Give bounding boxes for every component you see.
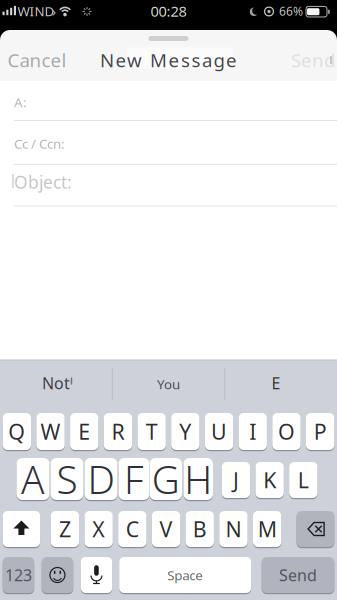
staticText: Send xyxy=(291,48,335,72)
staticText: C xyxy=(126,515,139,543)
staticText: T xyxy=(146,417,158,446)
staticText: 00:28 xyxy=(150,1,186,21)
staticText: I xyxy=(249,417,256,446)
button[interactable]: Shift xyxy=(3,511,40,547)
staticText: X xyxy=(92,515,105,543)
button[interactable]: A xyxy=(16,458,49,500)
button[interactable]: Object: xyxy=(14,165,337,199)
staticText: 66% xyxy=(279,3,303,19)
button[interactable]: N xyxy=(219,511,248,547)
button[interactable]: K xyxy=(255,462,284,498)
staticText: B xyxy=(193,515,207,543)
button[interactable]: U xyxy=(205,413,233,450)
staticText: K xyxy=(263,466,276,494)
staticText: Q xyxy=(8,417,25,446)
staticText: G xyxy=(152,453,180,505)
staticText: H xyxy=(184,453,212,505)
button[interactable]: Z xyxy=(51,511,79,547)
button[interactable]: Delete xyxy=(297,511,334,547)
button[interactable]: L xyxy=(289,462,317,498)
button[interactable]: H xyxy=(183,458,213,500)
staticText: New Message xyxy=(100,48,237,72)
button[interactable]: V xyxy=(152,511,180,547)
button[interactable]: J xyxy=(222,462,250,498)
button[interactable]: Numbers xyxy=(3,557,34,593)
staticText: F xyxy=(124,453,144,505)
button[interactable]: Send xyxy=(291,48,335,72)
staticText: M xyxy=(258,515,277,543)
button[interactable]: E xyxy=(221,363,331,403)
button[interactable]: M xyxy=(253,511,281,547)
button[interactable]: Drag indicator xyxy=(148,36,188,41)
button[interactable]: Space xyxy=(119,557,251,593)
staticText: E xyxy=(271,372,280,394)
staticText: J xyxy=(233,466,239,494)
button[interactable]: Not xyxy=(1,363,111,403)
button[interactable]: D xyxy=(84,458,117,500)
button[interactable]: A: xyxy=(14,87,337,117)
staticText: WIND xyxy=(17,2,54,20)
staticText: U xyxy=(211,417,227,446)
staticText: P xyxy=(314,417,327,446)
staticText: D xyxy=(87,453,114,505)
staticText: V xyxy=(160,515,173,543)
staticText: Cancel xyxy=(7,48,66,72)
button[interactable]: Emoji xyxy=(42,557,73,593)
staticText: L xyxy=(298,466,309,494)
staticText: Space xyxy=(167,566,203,584)
staticText: › xyxy=(52,2,56,20)
button[interactable]: B xyxy=(186,511,214,547)
staticText: Not xyxy=(42,372,70,394)
button[interactable]: C xyxy=(118,511,146,547)
staticText: R xyxy=(111,417,124,446)
button[interactable]: S xyxy=(50,458,83,500)
staticText: A xyxy=(21,453,45,505)
staticText: Z xyxy=(59,515,71,543)
staticText: N xyxy=(225,515,241,543)
button[interactable]: Send xyxy=(262,557,334,593)
button[interactable]: T xyxy=(137,413,166,450)
staticText: Cc / Ccn: xyxy=(14,135,65,152)
button[interactable]: O xyxy=(272,413,301,450)
button[interactable]: F xyxy=(118,458,149,500)
staticText: 123 xyxy=(5,564,32,586)
staticText: A: xyxy=(14,93,27,111)
button[interactable]: R xyxy=(104,413,132,450)
staticText: You xyxy=(157,375,180,393)
staticText: E xyxy=(78,417,90,446)
button[interactable]: X xyxy=(84,511,113,547)
button[interactable]: Q xyxy=(3,413,31,450)
button[interactable]: E xyxy=(70,413,98,450)
staticText: Send xyxy=(279,564,317,586)
button[interactable]: Cc / Ccn: xyxy=(14,128,337,158)
button[interactable]: Y xyxy=(171,413,199,450)
button[interactable]: Dictate xyxy=(81,557,112,593)
button[interactable]: I xyxy=(239,413,267,450)
staticText: Y xyxy=(179,417,191,446)
button[interactable]: W xyxy=(36,413,65,450)
staticText: Object: xyxy=(14,170,72,193)
button[interactable]: P xyxy=(306,413,334,450)
button[interactable]: Cancel xyxy=(7,48,66,72)
staticText: W xyxy=(41,417,61,446)
button[interactable]: You xyxy=(113,364,223,404)
button[interactable]: G xyxy=(149,458,182,500)
staticText: S xyxy=(56,453,77,505)
staticText: O xyxy=(278,417,295,446)
